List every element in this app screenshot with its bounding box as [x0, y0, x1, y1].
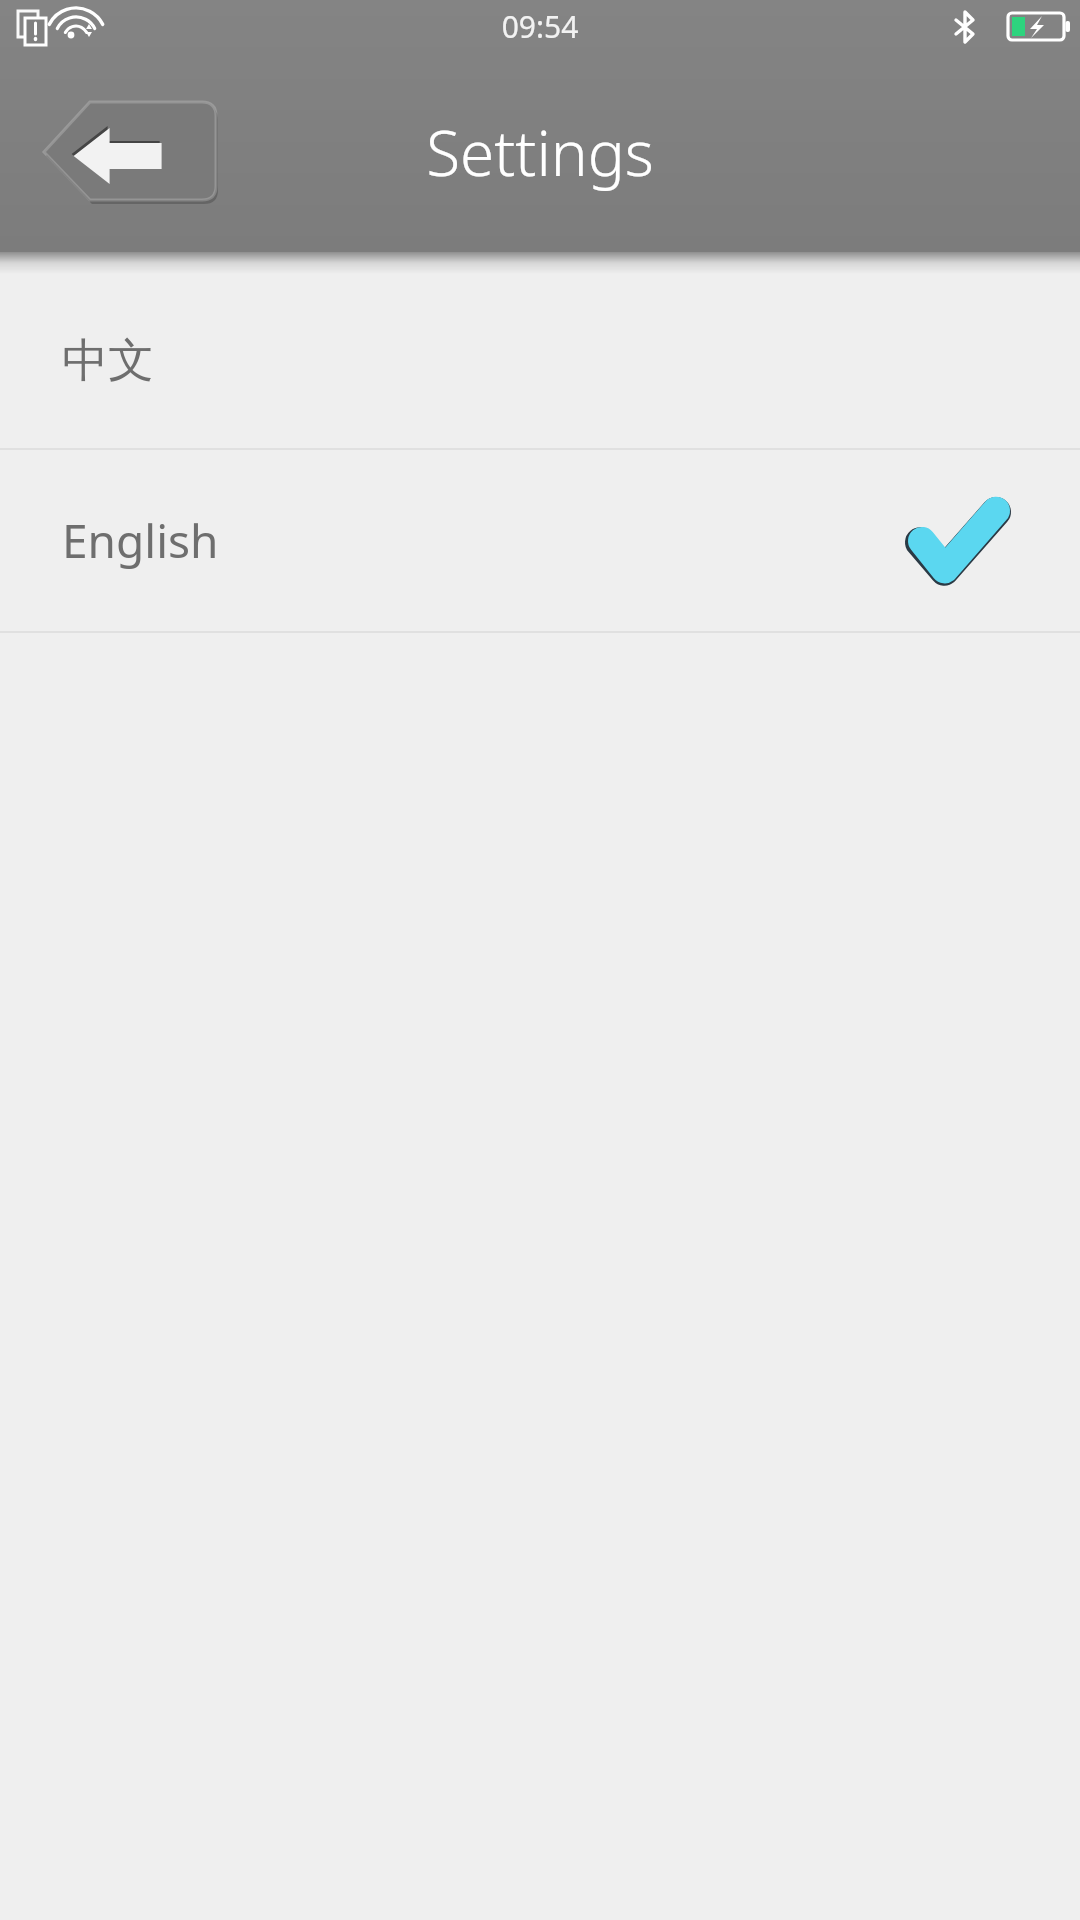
staticText: English: [62, 509, 219, 572]
button[interactable]: English: [0, 450, 1080, 631]
staticText: 09:54: [0, 6, 1080, 52]
button[interactable]: Back: [40, 100, 220, 204]
button[interactable]: 中文: [0, 274, 1080, 448]
staticText: 中文: [62, 332, 154, 390]
staticText: Settings: [426, 110, 654, 194]
